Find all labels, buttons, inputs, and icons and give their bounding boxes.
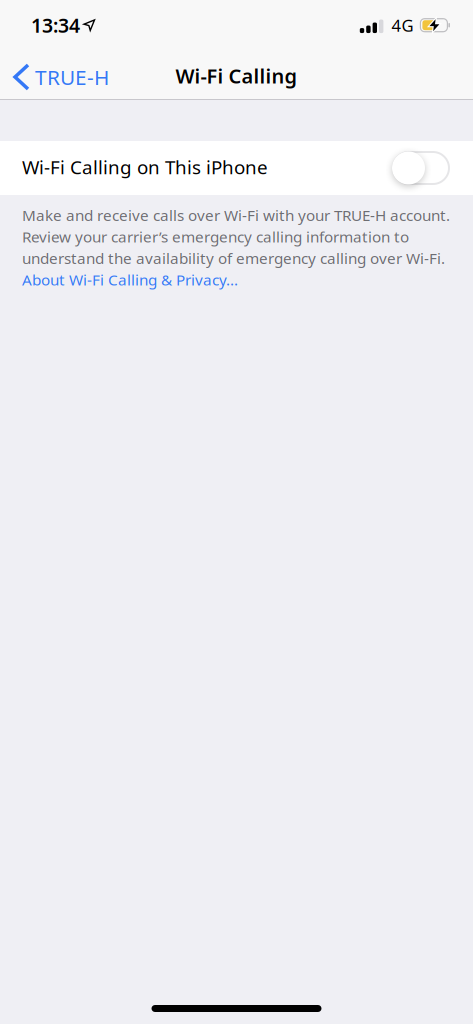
button[interactable]: Wi-Fi Calling on This iPhone — [392, 151, 450, 185]
staticText: Wi-Fi Calling — [175, 62, 297, 89]
staticText: Make and receive calls over Wi-Fi with y… — [22, 205, 450, 225]
button[interactable]: About Wi-Fi Calling & Privacy... — [22, 269, 238, 290]
staticText: Review your carrier’s emergency calling … — [22, 226, 409, 247]
staticText: understand the availability of emergency… — [22, 248, 445, 268]
staticText: 4G — [391, 14, 413, 36]
staticText: 13:34 — [31, 12, 80, 38]
staticText: Wi-Fi Calling on This iPhone — [22, 154, 268, 179]
staticText: TRUE-H — [35, 63, 109, 91]
button[interactable]: TRUE-H — [0, 63, 109, 91]
staticText: About Wi-Fi Calling & Privacy... — [22, 269, 238, 290]
